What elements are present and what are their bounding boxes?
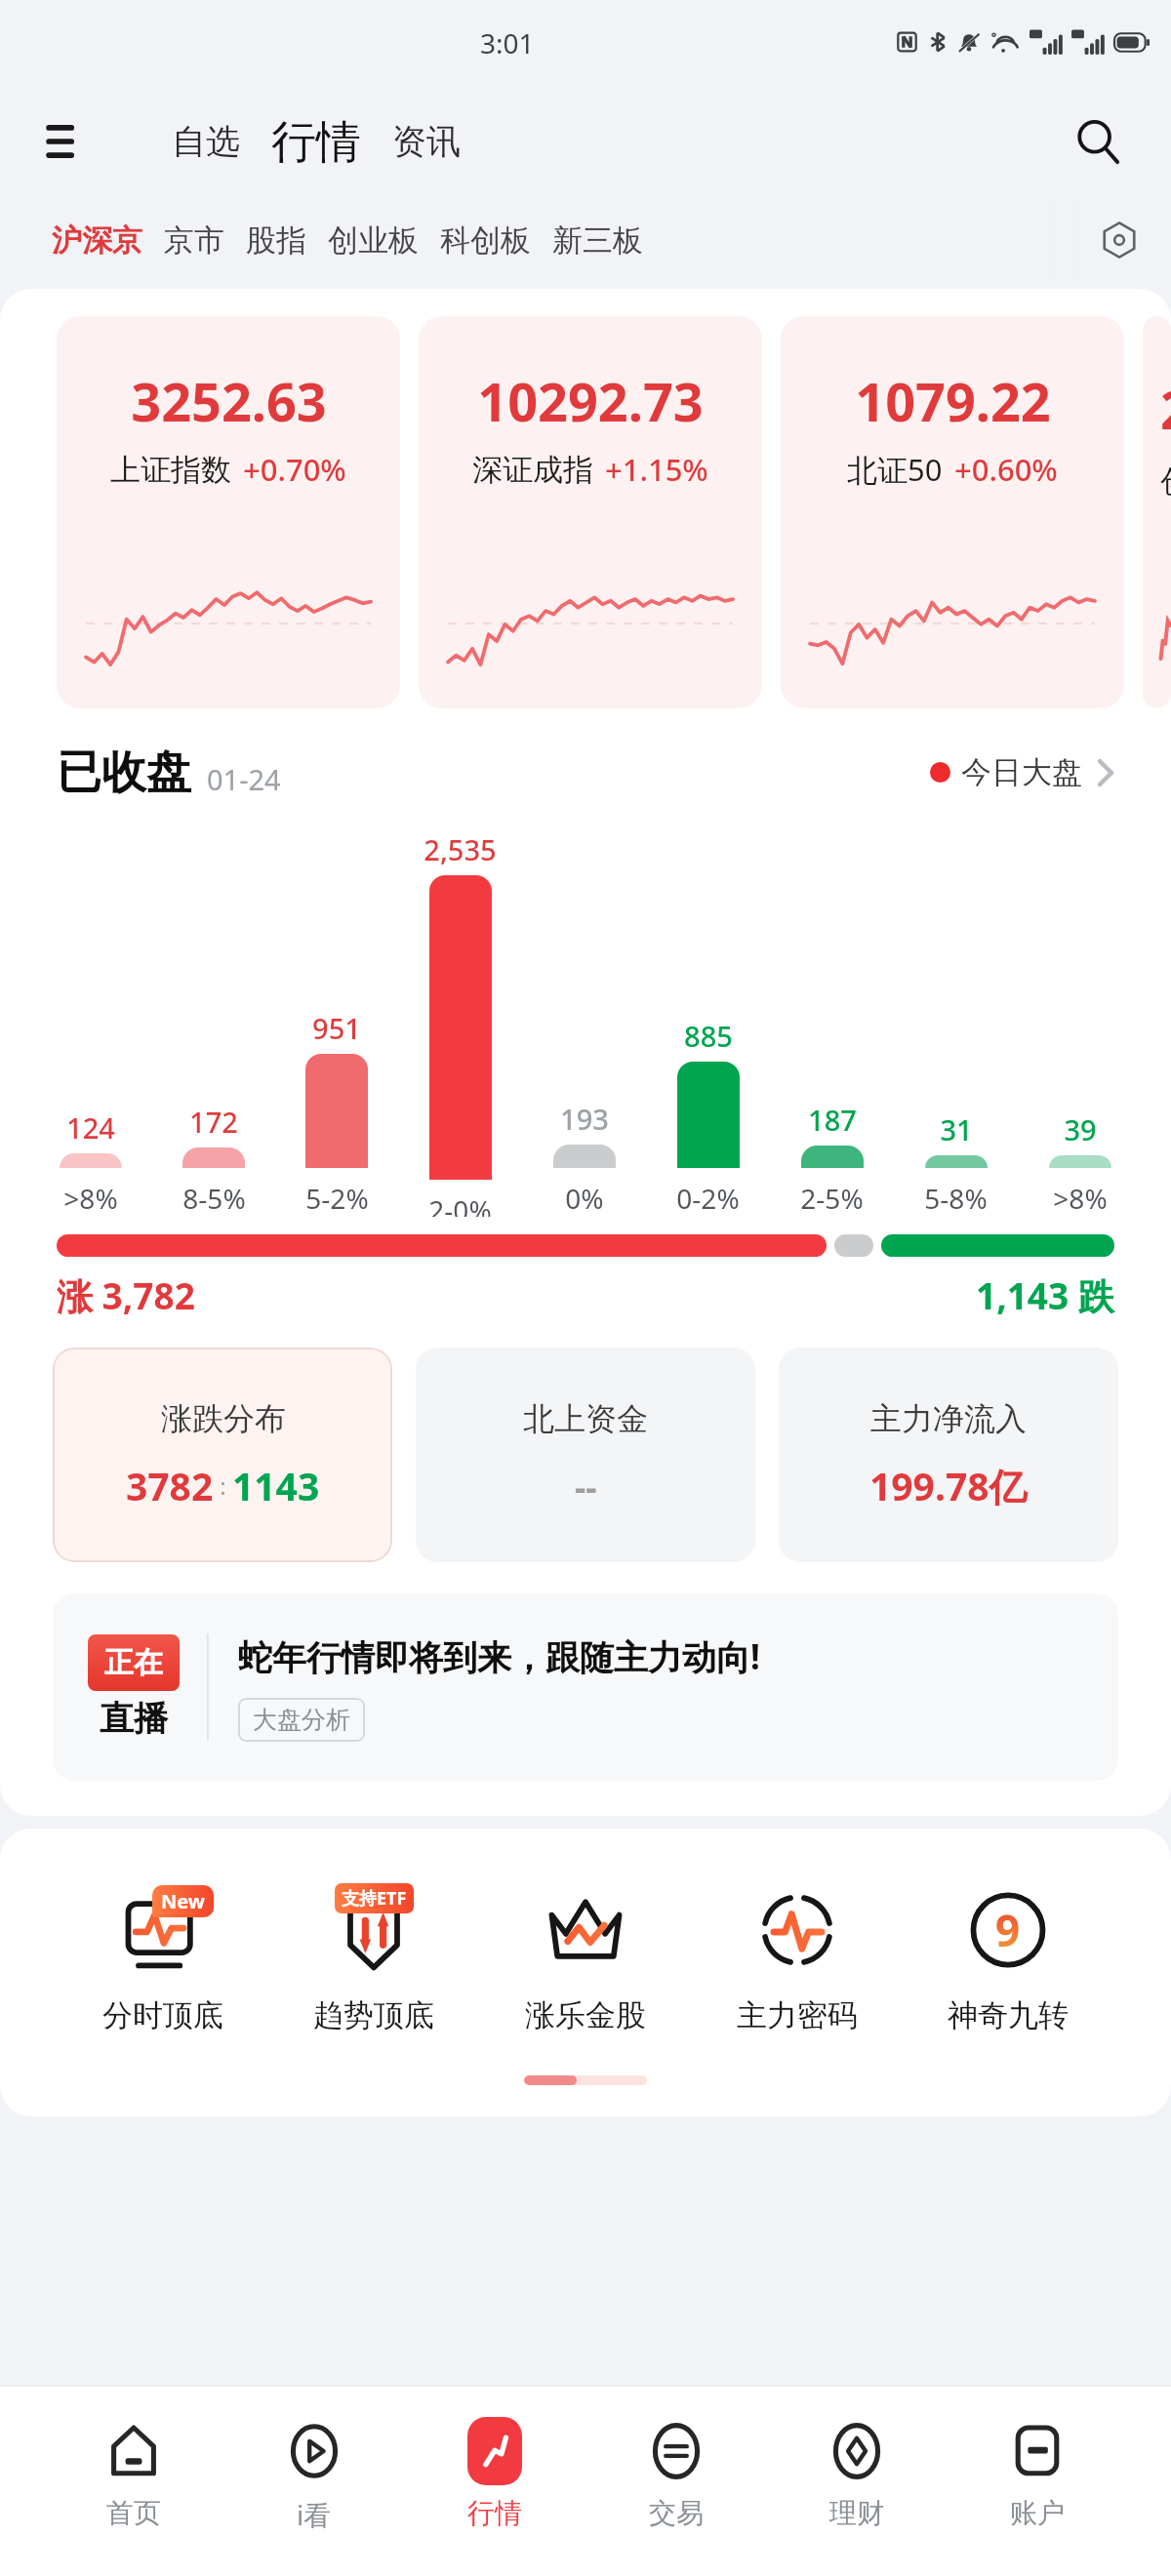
- staticText: 涨 3,782: [57, 1270, 195, 1320]
- staticText: 5-8%: [924, 1180, 988, 1217]
- staticText: 31: [940, 1110, 973, 1148]
- staticText: 885: [684, 1017, 733, 1055]
- staticText: 北证50: [847, 449, 943, 490]
- button[interactable]: 124: [29, 1108, 152, 1217]
- button[interactable]: 主力密码: [729, 1875, 866, 2038]
- button[interactable]: 行情: [448, 2412, 542, 2534]
- staticText: +0.70%: [243, 449, 346, 490]
- staticText: 193: [560, 1100, 609, 1138]
- staticText: 蛇年行情即将到来，跟随主力动向!: [238, 1633, 760, 1680]
- staticText: 京市: [164, 221, 224, 260]
- button[interactable]: 172: [152, 1103, 275, 1217]
- staticText: --: [575, 1464, 597, 1510]
- staticText: 正在: [104, 1644, 163, 1681]
- button[interactable]: Menu: [37, 111, 98, 172]
- staticText: i看: [297, 2496, 332, 2533]
- staticText: 今日大盘: [961, 753, 1082, 791]
- button[interactable]: 新三板: [542, 210, 654, 271]
- button[interactable]: 涨乐金股: [517, 1875, 654, 2038]
- button[interactable]: 9: [940, 1875, 1076, 2038]
- staticText: 涨跌分布: [161, 1399, 286, 1438]
- staticText: 账户: [1010, 2496, 1065, 2530]
- staticText: >8%: [63, 1180, 118, 1217]
- staticText: +1.15%: [605, 449, 708, 490]
- staticText: 资讯: [392, 120, 461, 163]
- staticText: 199.78亿: [869, 1460, 1028, 1511]
- button[interactable]: 账户: [990, 2412, 1084, 2534]
- staticText: New: [161, 1888, 205, 1914]
- staticText: 已收盘: [57, 745, 191, 801]
- staticText: 2-0%: [428, 1191, 492, 1217]
- button[interactable]: 2: [1143, 316, 1171, 708]
- button[interactable]: 行情: [263, 112, 369, 173]
- button[interactable]: 今日大盘: [930, 744, 1114, 801]
- staticText: 1,143 跌: [976, 1270, 1114, 1320]
- button[interactable]: 主力净流入: [779, 1348, 1118, 1562]
- staticText: 172: [189, 1103, 238, 1141]
- button[interactable]: 支持ETF: [305, 1875, 442, 2038]
- button[interactable]: 股指: [235, 210, 317, 271]
- button[interactable]: 首页: [87, 2412, 181, 2534]
- button[interactable]: 951: [275, 1009, 398, 1217]
- staticText: 187: [808, 1101, 857, 1139]
- staticText: 2,535: [424, 830, 497, 868]
- staticText: 01-24: [207, 760, 281, 798]
- staticText: 涨乐金股: [525, 1996, 646, 2034]
- staticText: 趋势顶底: [313, 1996, 434, 2034]
- button[interactable]: 科创板: [429, 210, 542, 271]
- staticText: :: [214, 1469, 232, 1502]
- button[interactable]: 交易: [629, 2412, 723, 2534]
- staticText: 行情: [271, 114, 361, 171]
- button[interactable]: 自选: [164, 110, 248, 173]
- button[interactable]: 10292.73: [419, 316, 762, 708]
- staticText: 9: [995, 1901, 1021, 1959]
- button[interactable]: 3252.63: [57, 316, 400, 708]
- staticText: 交易: [649, 2496, 704, 2530]
- button[interactable]: Settings: [1091, 212, 1148, 268]
- button[interactable]: 理财: [810, 2412, 904, 2534]
- staticText: 支持ETF: [342, 1886, 407, 1911]
- staticText: 行情: [467, 2496, 522, 2530]
- button[interactable]: 沪深京: [41, 210, 153, 271]
- staticText: 124: [66, 1108, 115, 1147]
- button[interactable]: 1079.22: [781, 316, 1124, 708]
- staticText: >8%: [1053, 1180, 1108, 1217]
- button[interactable]: 193: [522, 1100, 646, 1217]
- staticText: 3252.63: [131, 365, 327, 437]
- button[interactable]: 北上资金: [416, 1348, 755, 1562]
- button[interactable]: Search: [1066, 109, 1130, 174]
- staticText: 理财: [829, 2496, 884, 2530]
- staticText: 大盘分析: [253, 1705, 350, 1735]
- staticText: 1079.22: [855, 365, 1051, 437]
- staticText: 创: [1160, 463, 1171, 501]
- staticText: 神奇九转: [948, 1996, 1069, 2034]
- button[interactable]: 涨跌分布: [53, 1348, 392, 1562]
- staticText: 直播: [100, 1697, 168, 1740]
- staticText: 0%: [565, 1180, 604, 1217]
- staticText: 2-5%: [800, 1180, 864, 1217]
- staticText: 北上资金: [523, 1399, 648, 1438]
- button[interactable]: 正在: [53, 1593, 1118, 1781]
- staticText: 首页: [106, 2496, 161, 2530]
- button[interactable]: i看: [267, 2412, 361, 2537]
- staticText: 3:01: [480, 24, 535, 61]
- button[interactable]: 187: [770, 1101, 894, 1217]
- staticText: 深证成指: [472, 451, 593, 489]
- button[interactable]: 资讯: [384, 110, 468, 173]
- button[interactable]: 39: [1018, 1110, 1142, 1217]
- staticText: 3782: [126, 1460, 214, 1511]
- staticText: 主力净流入: [870, 1399, 1027, 1438]
- staticText: 39: [1064, 1110, 1097, 1148]
- staticText: 8-5%: [182, 1180, 246, 1217]
- button[interactable]: New: [95, 1875, 231, 2038]
- button[interactable]: 31: [894, 1110, 1018, 1217]
- staticText: +0.60%: [954, 449, 1058, 490]
- staticText: 自选: [172, 120, 240, 163]
- button[interactable]: 京市: [153, 210, 235, 271]
- button[interactable]: 885: [646, 1017, 770, 1217]
- button[interactable]: 创业板: [317, 210, 429, 271]
- button[interactable]: 2,535: [398, 830, 522, 1217]
- staticText: 新三板: [552, 221, 643, 260]
- staticText: 股指: [246, 221, 306, 260]
- staticText: 2: [1160, 373, 1171, 445]
